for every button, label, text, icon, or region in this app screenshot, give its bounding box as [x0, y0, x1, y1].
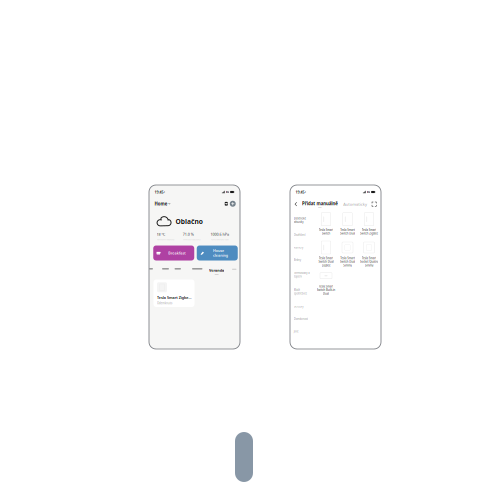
- staticText: Brány: [168, 232, 197, 246]
- button[interactable]: Tesla Smart Switch Built-in Dual: [254, 274, 340, 387]
- staticText: Termostaty a topení: [168, 284, 232, 312]
- staticText: House cleaning: [268, 191, 328, 230]
- button[interactable]: Kamery: [158, 164, 244, 214]
- button[interactable]: Malé spotřebiče: [158, 332, 244, 400]
- button[interactable]: Brány: [158, 214, 244, 264]
- button[interactable]: Tesla Smart Switch Dual Simmy: [340, 161, 426, 274]
- staticText: Tesla Smart Switch Dual ZigBee: [267, 225, 328, 267]
- staticText: Kamery: [168, 182, 206, 196]
- button[interactable]: Senzory: [158, 400, 244, 450]
- button[interactable]: House cleaning: [203, 181, 367, 241]
- staticText: Tesla Smart Switch Dual Simmy: [353, 225, 414, 267]
- staticText: Tesla Smart Switch Built-in Dual: [260, 338, 334, 380]
- button[interactable]: Breakfast: [29, 181, 193, 241]
- staticText: Veranda: [252, 271, 313, 290]
- button[interactable]: Kitchen: [184, 271, 226, 277]
- button[interactable]: Tesla Smart Switch Dual ZigBee: [254, 161, 340, 274]
- button[interactable]: Domácnost: [158, 450, 244, 482]
- staticText: Breakfast: [89, 201, 159, 221]
- button[interactable]: Veranda: [252, 271, 313, 298]
- button[interactable]: Tesla Smart Zigbe…: [30, 317, 194, 427]
- button[interactable]: Termostaty a topení: [158, 264, 244, 332]
